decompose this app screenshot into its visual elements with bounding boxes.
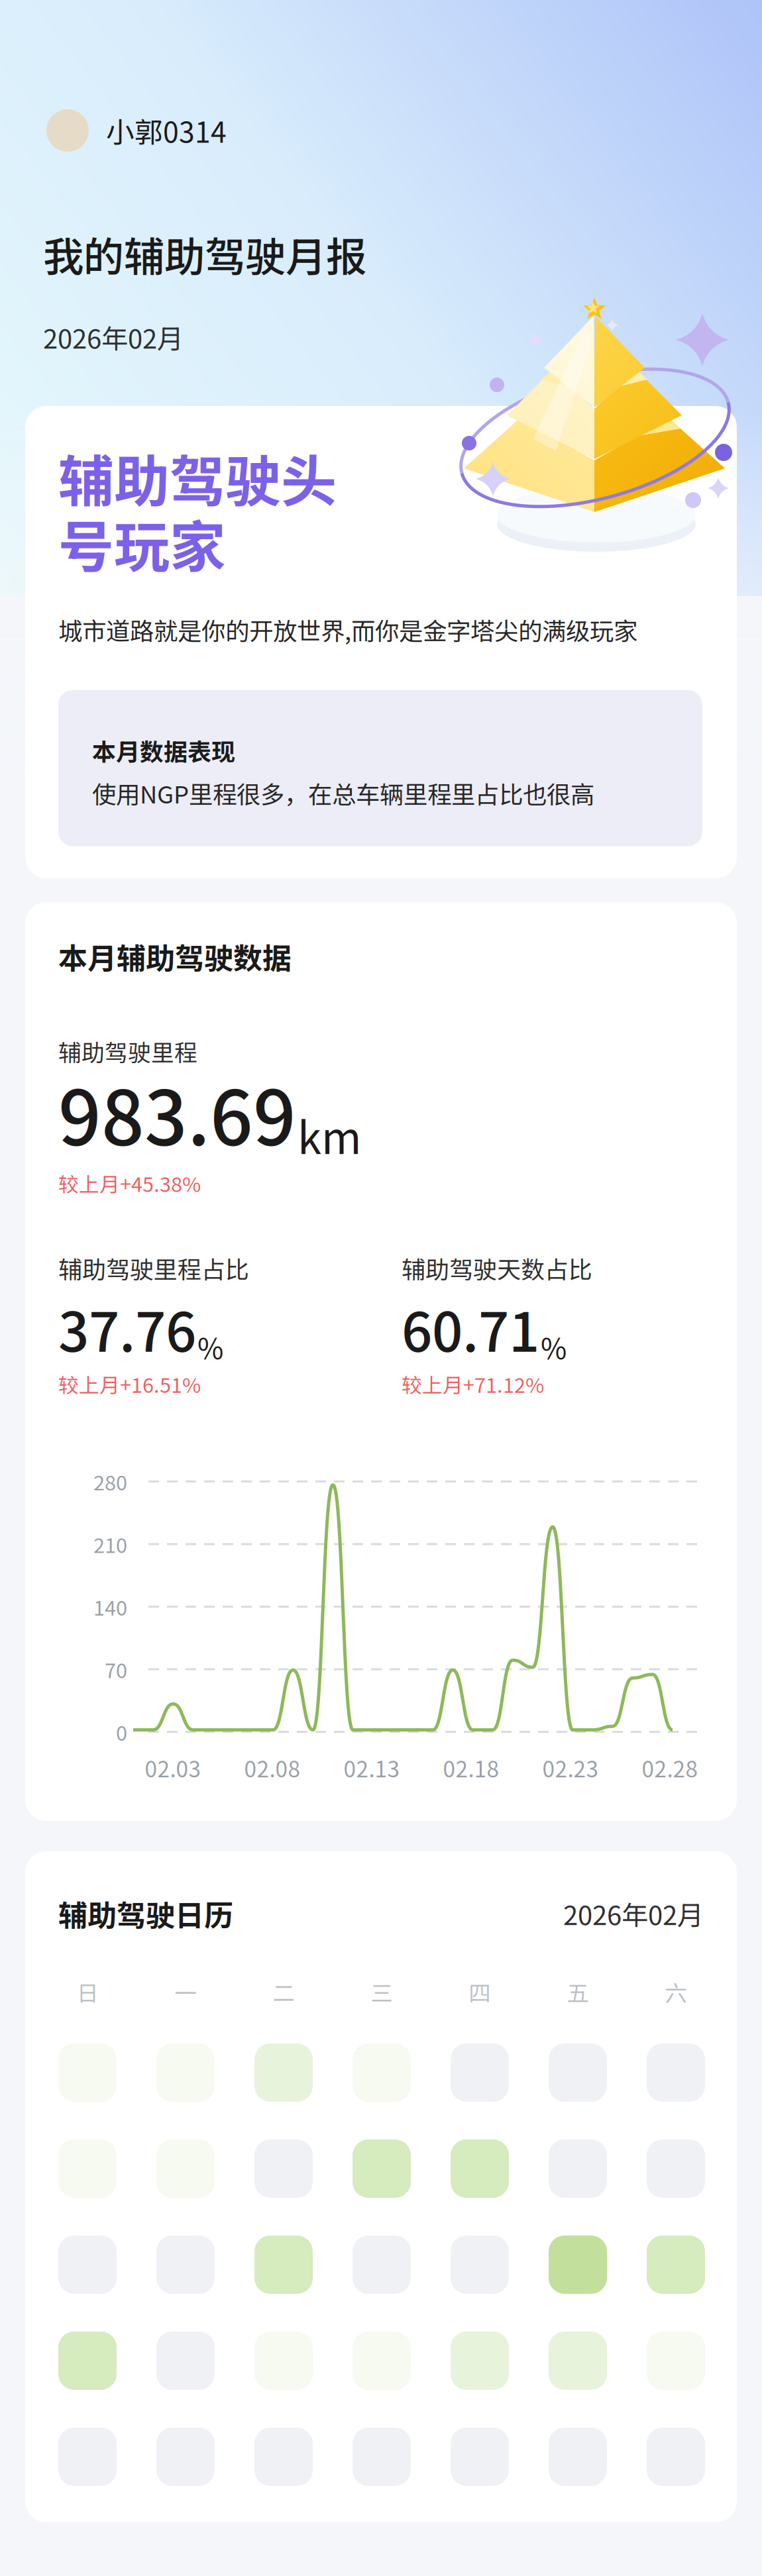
button[interactable]: 小郭0314	[46, 109, 227, 152]
staticText: %	[197, 1326, 223, 1367]
staticText: 六	[665, 1976, 687, 2008]
staticText: 02.18	[443, 1752, 499, 1784]
staticText: 辅助驾驶里程占比	[58, 1251, 249, 1285]
staticText: 小郭0314	[106, 110, 227, 151]
staticText: 较上月+16.51%	[58, 1369, 201, 1399]
staticText: 五	[567, 1976, 589, 2008]
staticText: %	[541, 1326, 567, 1367]
staticText: 日	[77, 1976, 98, 2008]
staticText: 983.69	[58, 1058, 296, 1166]
staticText: 使用NGP里程很多，在总车辆里程里占比也很高	[92, 776, 594, 810]
staticText: 辅助驾驶头	[58, 437, 337, 518]
staticText: 辅助驾驶日历	[58, 1892, 233, 1935]
staticText: 三	[371, 1976, 393, 2008]
staticText: 较上月+45.38%	[58, 1168, 201, 1198]
staticText: 号玩家	[58, 503, 225, 583]
staticText: 我的辅助驾驶月报	[43, 225, 366, 283]
staticText: 02.03	[145, 1752, 201, 1784]
staticText: 2026年02月	[43, 318, 184, 356]
staticText: 60.71	[402, 1289, 539, 1367]
staticText: 本月辅助驾驶数据	[58, 935, 292, 977]
staticText: 02.13	[344, 1752, 400, 1784]
staticText: 0	[116, 1717, 127, 1747]
staticText: 02.23	[542, 1752, 599, 1784]
staticText: 2026年02月	[563, 1894, 704, 1933]
staticText: km	[298, 1104, 361, 1166]
staticText: 四	[469, 1976, 491, 2008]
staticText: 37.76	[58, 1289, 196, 1367]
staticText: 较上月+71.12%	[402, 1369, 544, 1399]
staticText: 210	[93, 1529, 127, 1559]
staticText: 辅助驾驶里程	[58, 1034, 197, 1068]
staticText: 城市道路就是你的开放世界,而你是金字塔尖的满级玩家	[58, 612, 637, 647]
staticText: 02.28	[642, 1752, 698, 1784]
staticText: 02.08	[244, 1752, 300, 1784]
staticText: 140	[93, 1592, 127, 1621]
staticText: 70	[105, 1655, 127, 1684]
staticText: 二	[273, 1976, 295, 2008]
staticText: 280	[93, 1467, 127, 1496]
staticText: 本月数据表现	[92, 733, 235, 768]
staticText: 一	[175, 1976, 196, 2008]
staticText: 辅助驾驶天数占比	[402, 1251, 592, 1285]
